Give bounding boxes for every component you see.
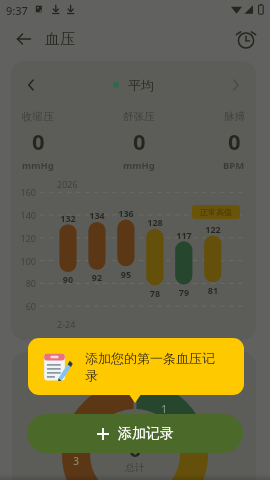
staticText: 2026 — [57, 178, 78, 190]
staticText: 80 — [11, 277, 36, 289]
staticText: 81 — [200, 284, 226, 296]
staticText: 60 — [11, 300, 36, 312]
staticText: 140 — [11, 209, 36, 221]
staticText: 100 — [11, 255, 36, 267]
staticText: 117 — [171, 229, 197, 241]
button[interactable]: 添加您的第一条血压记录 — [28, 338, 244, 395]
staticText: mmHg — [22, 159, 54, 172]
staticText: 90 — [55, 273, 81, 285]
button[interactable]: Previous period — [11, 61, 51, 109]
staticText: 舒张压 — [123, 110, 155, 123]
staticText: 添加记录 — [118, 425, 174, 443]
button[interactable]: Reminder — [231, 24, 261, 54]
button[interactable]: 添加记录 — [27, 414, 243, 453]
staticText: 132 — [55, 212, 81, 224]
staticText: 122 — [200, 223, 226, 235]
staticText: 脉搏 — [224, 110, 245, 123]
staticText: 0 — [32, 126, 45, 156]
staticText: 78 — [142, 287, 168, 299]
staticText: 总计 — [123, 461, 147, 474]
staticText: 120 — [11, 232, 36, 244]
staticText: 添加您的第一条血压记录 — [85, 350, 220, 384]
staticText: 正常高值 — [200, 207, 232, 217]
staticText: 6 — [127, 436, 143, 463]
staticText: 1 — [160, 402, 168, 416]
staticText: 平均 — [128, 77, 154, 93]
staticText: 92 — [84, 271, 110, 283]
staticText: BPM — [223, 159, 245, 172]
staticText: 3 — [72, 454, 80, 468]
staticText: 血压 — [45, 30, 75, 49]
staticText: mmHg — [123, 159, 155, 172]
staticText: 0 — [133, 126, 146, 156]
staticText: 128 — [142, 216, 168, 228]
staticText: 收缩压 — [22, 110, 54, 123]
staticText: 160 — [11, 186, 36, 198]
button[interactable]: Back — [9, 24, 39, 54]
staticText: 9:37 — [6, 3, 28, 18]
staticText: 134 — [84, 209, 110, 221]
staticText: 79 — [171, 286, 197, 298]
staticText: 2-24 — [57, 318, 76, 330]
staticText: 95 — [113, 268, 139, 280]
staticText: 136 — [113, 207, 139, 219]
staticText: 0 — [228, 126, 241, 156]
